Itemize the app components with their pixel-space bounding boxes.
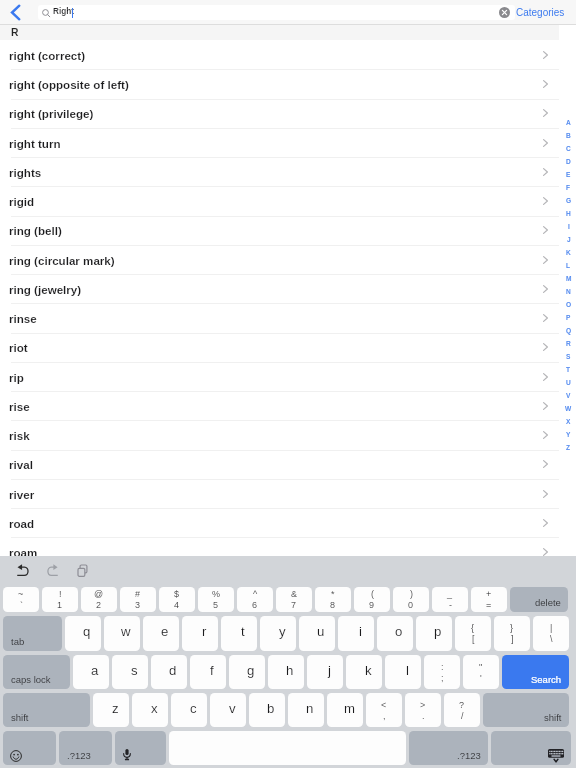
button[interactable]: J	[560, 233, 576, 246]
button[interactable]: Undo	[12, 560, 34, 581]
button[interactable]: u	[299, 616, 335, 651]
button[interactable]: Q	[560, 324, 576, 337]
button[interactable]: m	[327, 693, 363, 727]
button[interactable]: ring (jewelry)	[0, 274, 576, 303]
button[interactable]: rival	[0, 449, 576, 478]
button[interactable]: $	[159, 587, 195, 612]
button[interactable]: A	[560, 116, 576, 129]
button[interactable]: rigid	[0, 186, 576, 215]
button[interactable]: "	[463, 655, 499, 689]
button[interactable]: O	[560, 298, 576, 311]
button[interactable]: o	[377, 616, 413, 651]
button[interactable]: _	[432, 587, 468, 612]
button[interactable]: ring (circular mark)	[0, 245, 576, 274]
button[interactable]: right turn	[0, 128, 576, 157]
button[interactable]: right (opposite of left)	[0, 69, 576, 98]
button[interactable]: G	[560, 194, 576, 207]
button[interactable]: T	[560, 363, 576, 376]
button[interactable]: a	[73, 655, 109, 689]
button[interactable]: Right	[38, 5, 515, 20]
button[interactable]: !	[42, 587, 78, 612]
button[interactable]: #	[120, 587, 156, 612]
button[interactable]: g	[229, 655, 265, 689]
button[interactable]: j	[307, 655, 343, 689]
button[interactable]: K	[560, 246, 576, 259]
button[interactable]: roam	[0, 537, 576, 566]
button[interactable]: f	[190, 655, 226, 689]
button[interactable]: p	[416, 616, 452, 651]
button[interactable]: Search	[502, 655, 569, 689]
button[interactable]: r	[182, 616, 218, 651]
button[interactable]: <	[366, 693, 402, 727]
button[interactable]: road	[0, 508, 576, 537]
button[interactable]: ring (bell)	[0, 215, 576, 244]
button[interactable]: )	[393, 587, 429, 612]
button[interactable]: >	[405, 693, 441, 727]
button[interactable]: P	[560, 311, 576, 324]
button[interactable]: ^	[237, 587, 273, 612]
button[interactable]: M	[560, 272, 576, 285]
button[interactable]: {	[455, 616, 491, 651]
button[interactable]: shift	[3, 693, 90, 727]
button[interactable]: H	[560, 207, 576, 220]
button[interactable]: F	[560, 181, 576, 194]
button[interactable]: rights	[0, 157, 576, 186]
button[interactable]: }	[494, 616, 530, 651]
button[interactable]: Y	[560, 428, 576, 441]
button[interactable]: tab	[3, 616, 62, 651]
button[interactable]: d	[151, 655, 187, 689]
button[interactable]: I	[560, 220, 576, 233]
button[interactable]: q	[65, 616, 101, 651]
button[interactable]: Redo	[42, 560, 63, 581]
button[interactable]: Back	[0, 0, 30, 25]
button[interactable]: e	[143, 616, 179, 651]
button[interactable]: rip	[0, 362, 576, 391]
button[interactable]: rinse	[0, 303, 576, 332]
button[interactable]: k	[346, 655, 382, 689]
button[interactable]: n	[288, 693, 324, 727]
button[interactable]: l	[385, 655, 421, 689]
button[interactable]: .?123	[409, 731, 488, 765]
button[interactable]: right (privilege)	[0, 98, 576, 127]
button[interactable]: right (correct)	[0, 40, 576, 69]
button[interactable]: (	[354, 587, 390, 612]
button[interactable]	[115, 731, 166, 765]
button[interactable]: @	[81, 587, 117, 612]
button[interactable]: .?123	[59, 731, 112, 765]
button[interactable]: S	[560, 350, 576, 363]
button[interactable]: h	[268, 655, 304, 689]
button[interactable]: w	[104, 616, 140, 651]
button[interactable]: riot	[0, 332, 576, 361]
button[interactable]: ~	[3, 587, 39, 612]
button[interactable]: U	[560, 376, 576, 389]
button[interactable]: C	[560, 142, 576, 155]
button[interactable]: river	[0, 479, 576, 508]
button[interactable]: t	[221, 616, 257, 651]
button[interactable]: v	[210, 693, 246, 727]
button[interactable]: +	[471, 587, 507, 612]
button[interactable]: :	[424, 655, 460, 689]
button[interactable]: risk	[0, 420, 576, 449]
button[interactable]: *	[315, 587, 351, 612]
button[interactable]	[491, 731, 571, 765]
button[interactable]: &	[276, 587, 312, 612]
button[interactable]: B	[560, 129, 576, 142]
button[interactable]: rise	[0, 391, 576, 420]
button[interactable]: Z	[560, 441, 576, 454]
button[interactable]: shift	[483, 693, 569, 727]
button[interactable]: ?	[444, 693, 480, 727]
button[interactable]: E	[560, 168, 576, 181]
button[interactable]: W	[560, 402, 576, 415]
button[interactable]: %	[198, 587, 234, 612]
button[interactable]: b	[249, 693, 285, 727]
button[interactable]: Clear text	[499, 7, 510, 18]
button[interactable]: delete	[510, 587, 568, 612]
button[interactable]: |	[533, 616, 569, 651]
button[interactable]	[3, 731, 56, 765]
button[interactable]: z	[93, 693, 129, 727]
button[interactable]: L	[560, 259, 576, 272]
button[interactable]: c	[171, 693, 207, 727]
button[interactable]: y	[260, 616, 296, 651]
button[interactable]: N	[560, 285, 576, 298]
